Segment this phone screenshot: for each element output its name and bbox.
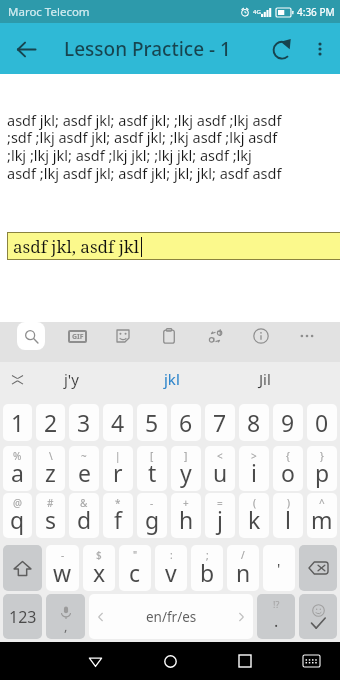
button[interactable]: Shift: [3, 545, 42, 591]
button[interactable]: ~: [69, 446, 99, 491]
button[interactable]: ): [273, 493, 303, 538]
staticText: Lesson Practice - 1: [64, 36, 231, 62]
staticText: jkl: [164, 369, 180, 389]
button[interactable]: -: [137, 493, 167, 538]
staticText: %: [13, 449, 22, 463]
staticText: ": [133, 548, 138, 562]
button[interactable]: Enter: [299, 594, 337, 639]
button[interactable]: Search: [17, 322, 45, 350]
staticText: *: [115, 496, 121, 510]
staticText: -: [150, 496, 154, 510]
button[interactable]: asdf jkl, asdf jkl: [7, 232, 340, 260]
button[interactable]: /: [227, 545, 259, 591]
staticText: a: [11, 457, 24, 488]
staticText: e: [78, 457, 91, 488]
button[interactable]: }: [307, 446, 337, 491]
staticText: 9: [281, 407, 295, 438]
staticText: 6: [179, 407, 193, 438]
staticText: 8: [247, 407, 261, 438]
staticText: .: [274, 610, 279, 632]
button[interactable]: 7: [205, 404, 235, 441]
staticText: j: [217, 504, 223, 535]
staticText: z: [45, 457, 56, 488]
button[interactable]: :: [155, 545, 187, 591]
staticText: [: [150, 449, 154, 463]
staticText: f: [114, 504, 122, 535]
button[interactable]: j'y: [34, 363, 109, 395]
button[interactable]: -: [46, 545, 79, 591]
staticText: x: [93, 557, 106, 588]
staticText: 123: [9, 606, 37, 628]
button[interactable]: [: [137, 446, 167, 491]
staticText: {: [286, 449, 290, 463]
button[interactable]: Clipboard: [155, 322, 183, 350]
button[interactable]: GIF: [63, 322, 91, 350]
button[interactable]: 8: [239, 404, 269, 441]
button[interactable]: Hide keyboard: [292, 642, 330, 680]
button[interactable]: Home: [151, 642, 189, 680]
staticText: Maroc Telecom: [8, 4, 90, 20]
button[interactable]: 9: [273, 404, 303, 441]
button[interactable]: ;: [191, 545, 223, 591]
button[interactable]: ^: [307, 493, 337, 538]
button[interactable]: \: [36, 446, 65, 491]
button[interactable]: @: [3, 493, 32, 538]
button[interactable]: jkl: [109, 363, 235, 395]
button[interactable]: More: [293, 322, 321, 350]
button[interactable]: 5: [137, 404, 167, 441]
staticText: >: [251, 449, 257, 463]
button[interactable]: 1: [3, 404, 32, 441]
button[interactable]: $: [83, 545, 115, 591]
staticText: GIF: [72, 332, 84, 342]
button[interactable]: 4: [103, 404, 133, 441]
staticText: 5: [145, 407, 159, 438]
button[interactable]: ": [119, 545, 151, 591]
button[interactable]: %: [3, 446, 32, 491]
staticText: y: [180, 457, 192, 488]
staticText: 4:36 PM: [297, 5, 335, 19]
staticText: h: [179, 504, 194, 535]
button[interactable]: Stickers: [109, 322, 137, 350]
button[interactable]: *: [103, 493, 133, 538]
button[interactable]: Back: [76, 642, 114, 680]
button[interactable]: (: [239, 493, 269, 538]
staticText: !?: [273, 598, 280, 610]
button[interactable]: 123: [3, 594, 42, 639]
staticText: v: [165, 557, 177, 588]
button[interactable]: Voice input: [46, 594, 85, 639]
button[interactable]: #: [36, 493, 65, 538]
button[interactable]: =: [205, 493, 235, 538]
button[interactable]: Info: [247, 322, 275, 350]
button[interactable]: Translate: [201, 322, 229, 350]
button[interactable]: Backspace: [299, 545, 337, 591]
staticText: asdf jkl; asdf jkl; asdf jkl; ;lkj asdf …: [7, 110, 282, 183]
button[interactable]: !?: [257, 594, 295, 639]
staticText: u: [213, 457, 228, 488]
button[interactable]: Jil: [235, 363, 295, 395]
button[interactable]: ': [263, 545, 295, 591]
staticText: }: [320, 449, 324, 463]
staticText: ;: [206, 548, 209, 562]
staticText: n: [236, 557, 251, 588]
button[interactable]: >: [239, 446, 269, 491]
button[interactable]: Back: [4, 27, 48, 71]
button[interactable]: +: [171, 493, 201, 538]
staticText: $: [96, 548, 102, 562]
button[interactable]: <: [205, 446, 235, 491]
button[interactable]: 6: [171, 404, 201, 441]
staticText: ~: [81, 449, 87, 463]
button[interactable]: More options: [302, 31, 338, 67]
button[interactable]: 0: [307, 404, 337, 441]
button[interactable]: 2: [36, 404, 65, 441]
staticText: s: [45, 504, 57, 535]
button[interactable]: &: [69, 493, 99, 538]
button[interactable]: en/fr/es: [89, 594, 253, 639]
button[interactable]: {: [273, 446, 303, 491]
button[interactable]: Refresh: [262, 29, 302, 69]
button[interactable]: Recent apps: [226, 642, 264, 680]
staticText: asdf jkl, asdf jkl: [13, 235, 140, 258]
button[interactable]: ]: [171, 446, 201, 491]
button[interactable]: 3: [69, 404, 99, 441]
button[interactable]: Hide suggestions: [0, 363, 34, 395]
button[interactable]: |: [103, 446, 133, 491]
